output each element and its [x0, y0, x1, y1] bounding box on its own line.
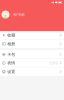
staticText: 相册	[7, 41, 15, 46]
button[interactable]: 用户名称	[0, 10, 64, 18]
staticText: 已开启	[49, 61, 58, 65]
staticText: 用户名称	[12, 12, 24, 17]
button[interactable]: 相册	[0, 40, 64, 48]
staticText: 表情	[7, 61, 15, 66]
button[interactable]: 表情	[0, 59, 64, 67]
staticText: 设置	[7, 69, 15, 74]
button[interactable]: 设置	[0, 68, 64, 76]
staticText: 卡包	[7, 52, 15, 57]
button[interactable]: 卡包	[0, 50, 64, 58]
button[interactable]: 收藏	[0, 31, 64, 39]
staticText: 收藏	[7, 33, 15, 38]
